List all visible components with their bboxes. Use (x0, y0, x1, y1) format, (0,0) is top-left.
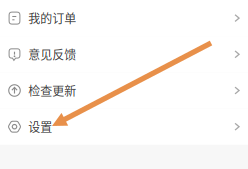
staticText: 设置 (28, 118, 52, 135)
button[interactable]: 设置 (0, 109, 248, 145)
staticText: 我的订单 (28, 9, 76, 27)
button[interactable]: 意见反馈 (0, 36, 248, 72)
button[interactable]: 检查更新 (0, 72, 248, 109)
staticText: 检查更新 (28, 82, 76, 99)
staticText: 意见反馈 (28, 46, 76, 63)
button[interactable]: 我的订单 (0, 0, 248, 36)
